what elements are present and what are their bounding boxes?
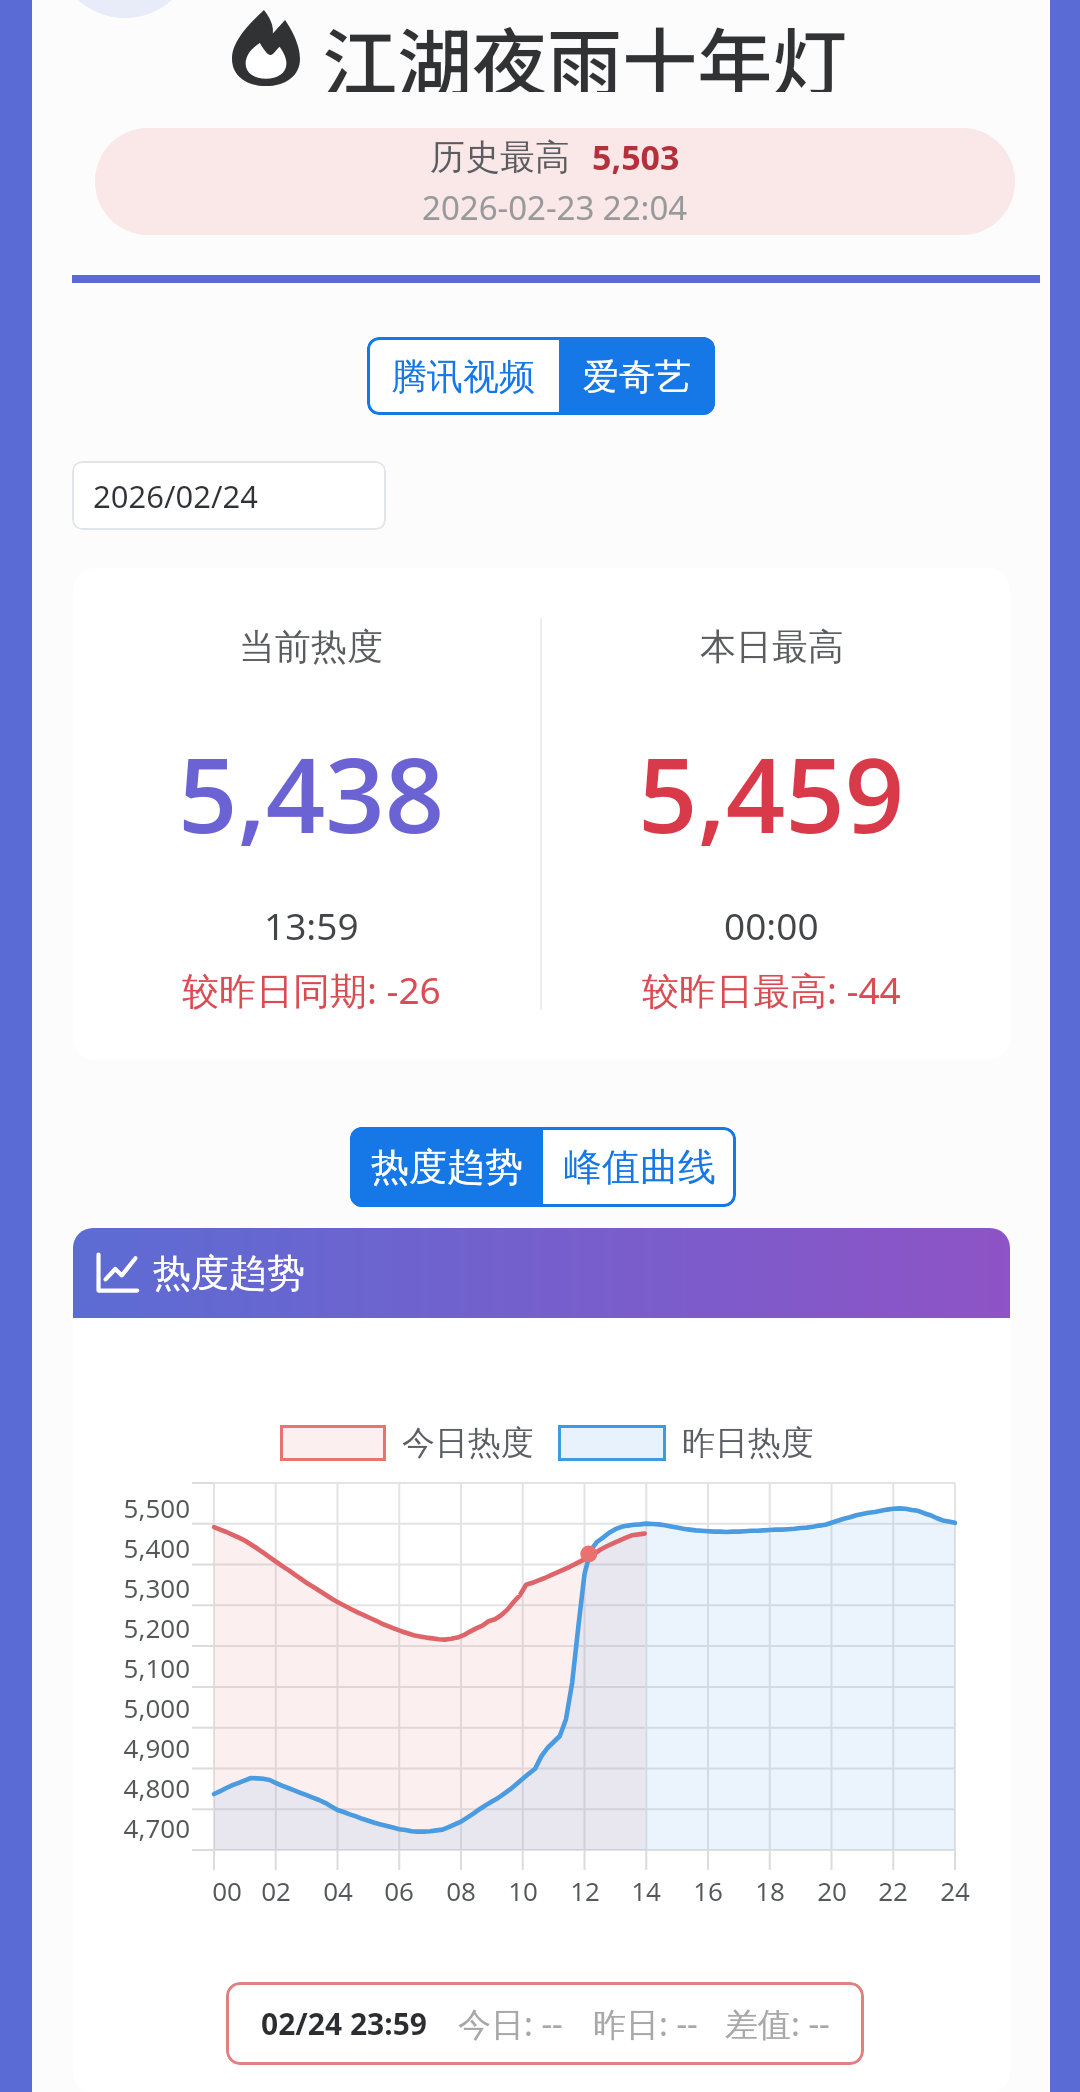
- staticText: 差值: --: [725, 2001, 830, 2046]
- staticText: 12: [545, 1873, 625, 1908]
- staticText: 24: [915, 1873, 995, 1908]
- staticText: 08: [421, 1873, 501, 1908]
- staticText: 5,459: [638, 722, 905, 864]
- staticText: 5,438: [178, 722, 445, 864]
- button[interactable]: 爱奇艺: [559, 337, 715, 415]
- staticText: 04: [298, 1873, 378, 1908]
- staticText: 今日热度: [402, 1422, 534, 1464]
- staticText: 02/24 23:59: [261, 2003, 427, 2044]
- button[interactable]: 2026/02/24: [72, 461, 386, 530]
- staticText: 4,900: [73, 1730, 190, 1765]
- staticText: 腾讯视频: [391, 354, 535, 399]
- staticText: 2026/02/24: [93, 475, 258, 517]
- staticText: 爱奇艺: [583, 354, 691, 399]
- staticText: 14: [606, 1873, 686, 1908]
- button[interactable]: 腾讯视频: [367, 337, 559, 415]
- staticText: 22: [853, 1873, 933, 1908]
- staticText: 00:00: [724, 900, 819, 950]
- staticText: 5,503: [592, 134, 680, 180]
- staticText: 较昨日同期: -26: [182, 964, 441, 1015]
- staticText: 历史最高: [430, 135, 570, 179]
- staticText: 00: [187, 1873, 267, 1908]
- staticText: 20: [792, 1873, 872, 1908]
- other: Hot: [232, 10, 300, 86]
- staticText: 02: [236, 1873, 316, 1908]
- staticText: 4,800: [73, 1770, 190, 1805]
- staticText: 今日: --: [458, 2001, 563, 2046]
- staticText: 昨日: --: [593, 2001, 698, 2046]
- button[interactable]: 02/24 23:59: [226, 1982, 864, 2065]
- staticText: 热度趋势: [153, 1249, 305, 1297]
- button[interactable]: 峰值曲线: [543, 1127, 736, 1207]
- staticText: 16: [668, 1873, 748, 1908]
- button[interactable]: 历史最高: [95, 128, 1015, 235]
- staticText: 13:59: [264, 900, 359, 950]
- staticText: 5,300: [73, 1570, 190, 1605]
- staticText: 热度趋势: [371, 1143, 523, 1191]
- staticText: 较昨日最高: -44: [642, 964, 901, 1015]
- staticText: 昨日热度: [682, 1422, 814, 1464]
- other: Trend: [95, 1253, 139, 1293]
- staticText: 18: [730, 1873, 810, 1908]
- staticText: 5,000: [73, 1690, 190, 1725]
- staticText: 5,100: [73, 1650, 190, 1685]
- staticText: 江湖夜雨十年灯: [322, 4, 848, 92]
- staticText: 5,400: [73, 1530, 190, 1565]
- button[interactable]: 热度趋势: [350, 1127, 543, 1207]
- staticText: 5,500: [73, 1490, 190, 1525]
- staticText: 本日最高: [700, 624, 844, 669]
- staticText: 06: [359, 1873, 439, 1908]
- staticText: 2026-02-23 22:04: [422, 185, 688, 230]
- staticText: 峰值曲线: [564, 1143, 716, 1191]
- staticText: 5,200: [73, 1610, 190, 1645]
- staticText: 4,700: [73, 1810, 190, 1845]
- staticText: 10: [483, 1873, 563, 1908]
- staticText: 当前热度: [239, 624, 383, 669]
